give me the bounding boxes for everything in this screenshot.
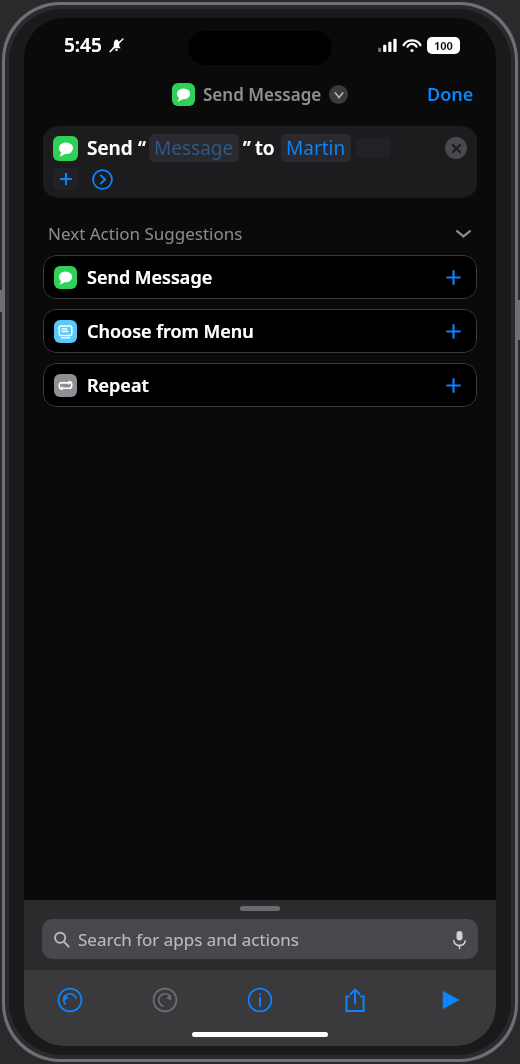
button[interactable]: Redo — [145, 980, 185, 1020]
staticText: 100 — [434, 38, 453, 53]
staticText: Done — [427, 82, 474, 107]
staticText: Send Message — [87, 265, 213, 290]
button[interactable]: Add Choose from Menu — [440, 318, 466, 344]
button[interactable]: Remove action — [445, 137, 467, 159]
button[interactable]: Send Message — [43, 255, 477, 299]
button[interactable]: Add parameter — [53, 168, 79, 190]
button[interactable]: Choose from Menu — [43, 309, 477, 353]
button[interactable]: Next Action Suggestions — [48, 222, 472, 245]
staticText: Repeat — [87, 373, 149, 398]
button[interactable]: Run — [430, 980, 470, 1020]
button[interactable]: Expand action — [91, 168, 113, 190]
staticText: Next Action Suggestions — [48, 222, 243, 245]
staticText: Martin — [286, 135, 346, 161]
button[interactable]: Send — [43, 126, 477, 198]
staticText: Choose from Menu — [87, 319, 254, 344]
staticText: Search for apps and actions — [78, 928, 299, 951]
button[interactable]: Repeat — [43, 363, 477, 407]
button[interactable]: Done — [405, 74, 496, 115]
staticText: Send — [87, 135, 133, 161]
staticText: to — [255, 135, 275, 161]
staticText: ” — [243, 135, 251, 161]
button[interactable]: Send Message — [172, 83, 348, 106]
button[interactable]: Info — [240, 980, 280, 1020]
staticText: Message — [154, 135, 234, 161]
button[interactable]: Undo — [50, 980, 90, 1020]
button[interactable]: Search for apps and actions — [42, 919, 478, 959]
button[interactable]: Share — [335, 980, 375, 1020]
button[interactable]: Add Send Message — [440, 264, 466, 290]
button[interactable]: Add Repeat — [440, 372, 466, 398]
staticText: “ — [138, 135, 146, 161]
staticText: Send Message — [203, 83, 322, 106]
staticText: 5:45 — [64, 32, 102, 58]
